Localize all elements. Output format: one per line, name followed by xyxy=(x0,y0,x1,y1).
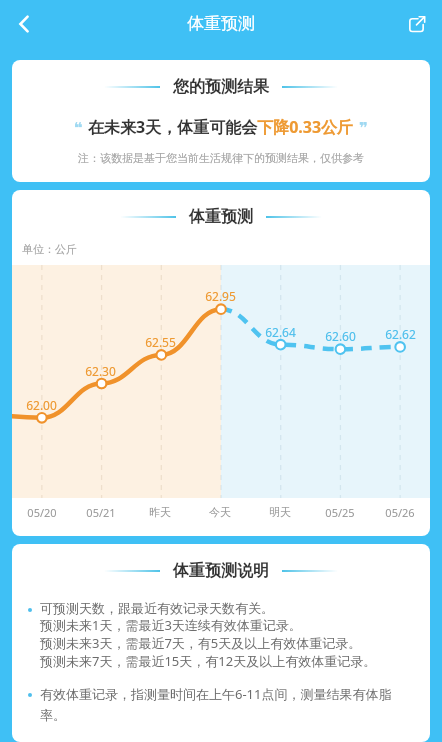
staticText: 您的预测结果 xyxy=(173,77,269,97)
staticText: 62.95 xyxy=(205,288,236,304)
staticText: 明天 xyxy=(269,505,291,519)
staticText: 05/21 xyxy=(86,505,116,520)
staticText: 昨天 xyxy=(149,505,171,519)
staticText: 今天 xyxy=(209,505,231,519)
staticText: 有效体重记录，指测量时间在上午6-11点间，测量结果有体脂率。 xyxy=(40,685,416,724)
staticText: 62.64 xyxy=(265,324,296,340)
staticText: 可预测天数，跟最近有效记录天数有关。 xyxy=(40,600,274,616)
button[interactable]: Back xyxy=(2,2,46,46)
staticText: 62.55 xyxy=(145,334,176,350)
staticText: 05/20 xyxy=(27,505,57,520)
staticText: 在未来3天，体重可能会下降0.33公斤 xyxy=(88,116,354,138)
staticText: 预测未来3天，需最近7天，有5天及以上有效体重记录。 xyxy=(40,634,362,652)
staticText: 预测未来7天，需最近15天，有12天及以上有效体重记录。 xyxy=(40,652,377,670)
staticText: 单位：公斤 xyxy=(22,242,77,256)
staticText: ❝ xyxy=(74,119,83,136)
staticText: 体重预测 xyxy=(187,13,255,34)
staticText: 05/25 xyxy=(325,505,355,520)
staticText: 预测未来1天，需最近3天连续有效体重记录。 xyxy=(40,616,302,634)
staticText: 体重预测 xyxy=(189,207,253,227)
staticText: 05/26 xyxy=(385,505,415,520)
staticText: 62.00 xyxy=(26,397,57,413)
button[interactable]: Share xyxy=(396,4,436,44)
staticText: 体重预测说明 xyxy=(173,561,269,581)
staticText: 注：该数据是基于您当前生活规律下的预测结果，仅供参考 xyxy=(78,151,364,165)
staticText: 62.60 xyxy=(325,328,356,344)
staticText: 62.30 xyxy=(85,363,116,379)
staticText: 62.62 xyxy=(385,326,416,342)
staticText: ❞ xyxy=(359,119,368,136)
